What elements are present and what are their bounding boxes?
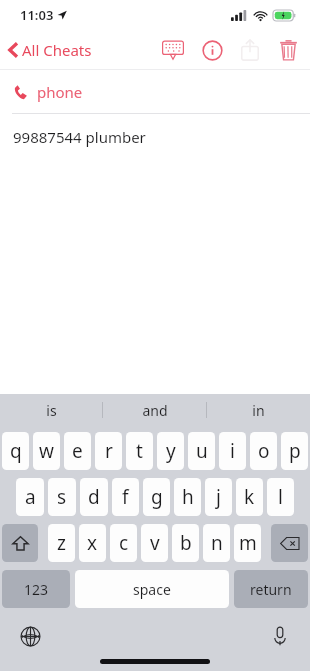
button[interactable]: return bbox=[234, 570, 308, 608]
button[interactable]: p bbox=[281, 432, 308, 470]
button[interactable]: phone bbox=[0, 70, 310, 113]
staticText: return bbox=[250, 580, 292, 599]
staticText: y bbox=[166, 438, 176, 464]
button[interactable]: j bbox=[205, 478, 232, 516]
button[interactable]: u bbox=[188, 432, 215, 470]
button[interactable]: o bbox=[250, 432, 277, 470]
button[interactable]: q bbox=[2, 432, 29, 470]
staticText: n bbox=[211, 530, 223, 556]
button[interactable]: l bbox=[267, 478, 294, 516]
staticText: t bbox=[136, 438, 143, 464]
button[interactable]: Share bbox=[234, 34, 266, 66]
button[interactable]: Dictate bbox=[264, 620, 296, 652]
button[interactable]: Change keyboard language bbox=[14, 620, 46, 652]
button[interactable]: n bbox=[203, 524, 230, 562]
button[interactable]: in bbox=[207, 394, 310, 426]
button[interactable]: b bbox=[172, 524, 199, 562]
staticText: d bbox=[88, 484, 100, 510]
staticText: 11:03 bbox=[20, 6, 54, 24]
staticText: c bbox=[119, 530, 129, 556]
staticText: f bbox=[122, 484, 129, 510]
button[interactable]: f bbox=[112, 478, 139, 516]
button[interactable]: m bbox=[234, 524, 261, 562]
staticText: x bbox=[87, 530, 98, 556]
button[interactable]: z bbox=[48, 524, 75, 562]
staticText: is bbox=[46, 401, 57, 420]
button[interactable]: space bbox=[75, 570, 229, 608]
staticText: 99887544 plumber bbox=[13, 127, 146, 147]
staticText: v bbox=[150, 530, 160, 556]
staticText: All Cheats bbox=[22, 40, 92, 60]
button[interactable]: y bbox=[157, 432, 184, 470]
button[interactable]: d bbox=[80, 478, 108, 516]
staticText: q bbox=[10, 438, 22, 464]
staticText: u bbox=[196, 438, 208, 464]
staticText: g bbox=[151, 484, 163, 510]
staticText: k bbox=[244, 484, 255, 510]
button[interactable]: and bbox=[103, 394, 206, 426]
staticText: and bbox=[142, 401, 168, 420]
staticText: p bbox=[289, 438, 301, 464]
staticText: in bbox=[252, 401, 265, 420]
button[interactable]: All Cheats bbox=[0, 34, 102, 66]
staticText: e bbox=[72, 438, 83, 464]
staticText: l bbox=[278, 484, 283, 510]
staticText: s bbox=[57, 484, 67, 510]
button[interactable]: k bbox=[236, 478, 263, 516]
staticText: j bbox=[216, 484, 221, 510]
staticText: a bbox=[25, 484, 36, 510]
button[interactable]: c bbox=[110, 524, 137, 562]
button[interactable]: s bbox=[48, 478, 76, 516]
button[interactable]: a bbox=[16, 478, 44, 516]
button[interactable]: Hide keyboard bbox=[156, 33, 190, 67]
button[interactable]: g bbox=[143, 478, 170, 516]
button[interactable]: v bbox=[141, 524, 168, 562]
staticText: z bbox=[57, 530, 66, 556]
staticText: i bbox=[230, 438, 235, 464]
staticText: h bbox=[182, 484, 194, 510]
staticText: m bbox=[239, 530, 257, 556]
staticText: 123 bbox=[24, 580, 49, 599]
button[interactable]: Backspace bbox=[271, 524, 308, 562]
button[interactable]: Info bbox=[196, 34, 228, 66]
button[interactable]: e bbox=[64, 432, 91, 470]
staticText: o bbox=[258, 438, 270, 464]
button[interactable]: w bbox=[33, 432, 60, 470]
button[interactable]: is bbox=[0, 394, 102, 426]
button[interactable]: r bbox=[95, 432, 122, 470]
button[interactable]: x bbox=[79, 524, 106, 562]
button[interactable]: i bbox=[219, 432, 246, 470]
button[interactable]: Delete bbox=[272, 34, 304, 66]
staticText: phone bbox=[37, 82, 83, 102]
button[interactable]: Shift bbox=[2, 524, 38, 562]
button[interactable]: h bbox=[174, 478, 201, 516]
button[interactable]: 123 bbox=[2, 570, 70, 608]
staticText: space bbox=[133, 580, 171, 599]
staticText: w bbox=[39, 438, 54, 464]
staticText: r bbox=[105, 438, 113, 464]
staticText: b bbox=[180, 530, 192, 556]
button[interactable]: t bbox=[126, 432, 153, 470]
